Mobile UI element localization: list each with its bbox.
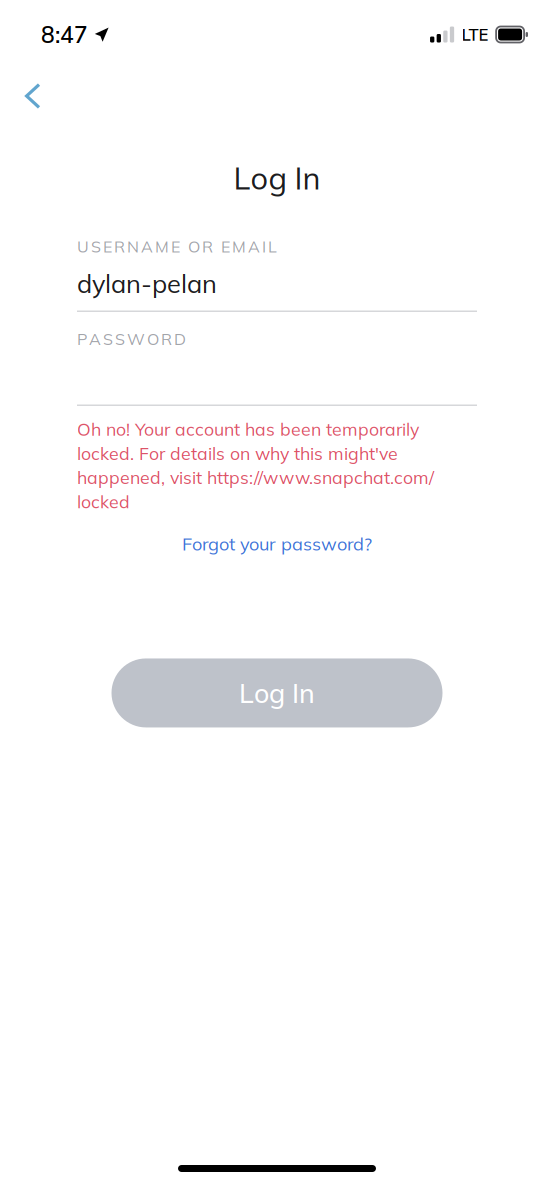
button[interactable]: Forgot your password?	[0, 523, 554, 564]
button[interactable]: Back	[0, 62, 61, 119]
staticText: LTE	[462, 24, 489, 45]
staticText: Log In	[233, 159, 320, 197]
staticText: Log In	[239, 676, 315, 710]
staticText: U S E R N A M E O R E M A I L	[77, 236, 277, 257]
staticText: Forgot your password?	[182, 532, 372, 555]
staticText: Oh no! Your account has been temporarily…	[77, 418, 434, 513]
staticText: dylan-pelan	[77, 268, 217, 299]
staticText: 8:47	[41, 20, 88, 49]
button[interactable]: Log In	[111, 658, 442, 727]
staticText: P A S S W O R D	[77, 329, 186, 349]
